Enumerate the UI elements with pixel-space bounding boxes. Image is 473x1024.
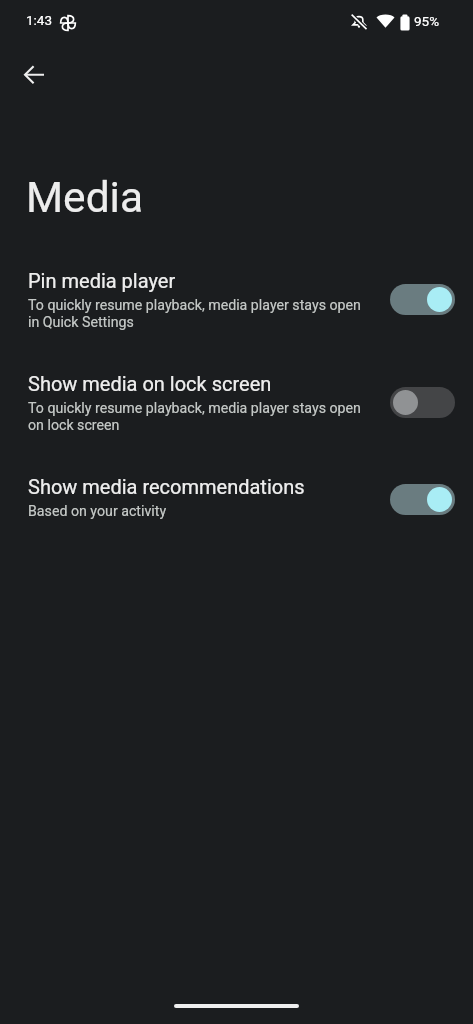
button[interactable]: Show media recommendations	[0, 471, 473, 563]
staticText: Show media recommendations	[28, 475, 408, 498]
staticText: Media	[26, 173, 144, 223]
button[interactable]: Back	[12, 53, 57, 98]
staticText: 1:43	[26, 12, 53, 28]
staticText: To quickly resume playback, media player…	[28, 400, 408, 434]
button[interactable]: Show media recommendations, on	[390, 484, 455, 515]
staticText: Show media on lock screen	[28, 372, 408, 395]
button[interactable]: Show media on lock screen	[0, 368, 473, 460]
staticText: Pin media player	[28, 269, 408, 292]
staticText: 95%	[414, 13, 440, 29]
staticText: To quickly resume playback, media player…	[28, 297, 408, 331]
button[interactable]: Pin media player	[0, 265, 473, 357]
button[interactable]: Pin media player, on	[390, 284, 455, 315]
staticText: Based on your activity	[28, 503, 408, 520]
button[interactable]: Show media on lock screen, off	[390, 387, 455, 418]
